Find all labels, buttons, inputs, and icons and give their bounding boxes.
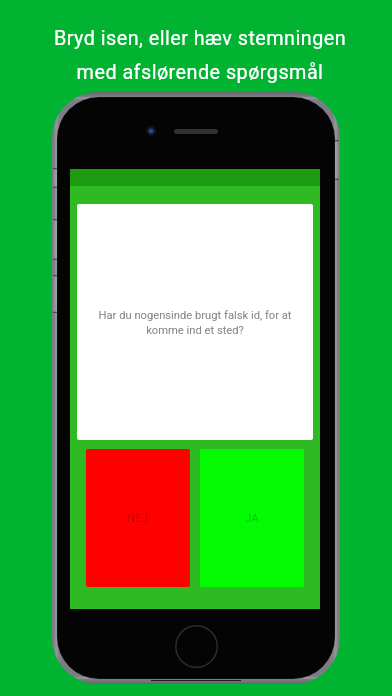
staticText: JA [245,512,259,525]
staticText: Bryd isen, eller hæv stemningen med afsl… [4,27,392,84]
button[interactable]: Power [335,140,339,180]
button[interactable]: Har du nogensinde brugt falsk id, for at… [77,204,313,440]
staticText: Har du nogensinde brugt falsk id, for at… [93,309,297,336]
button[interactable]: Volume up [53,219,57,260]
button[interactable]: Home [175,625,218,668]
button[interactable]: Silent mode [53,168,57,188]
button[interactable]: NEJ [86,449,190,587]
button[interactable]: Volume down [53,275,57,313]
staticText: NEJ [127,512,149,525]
